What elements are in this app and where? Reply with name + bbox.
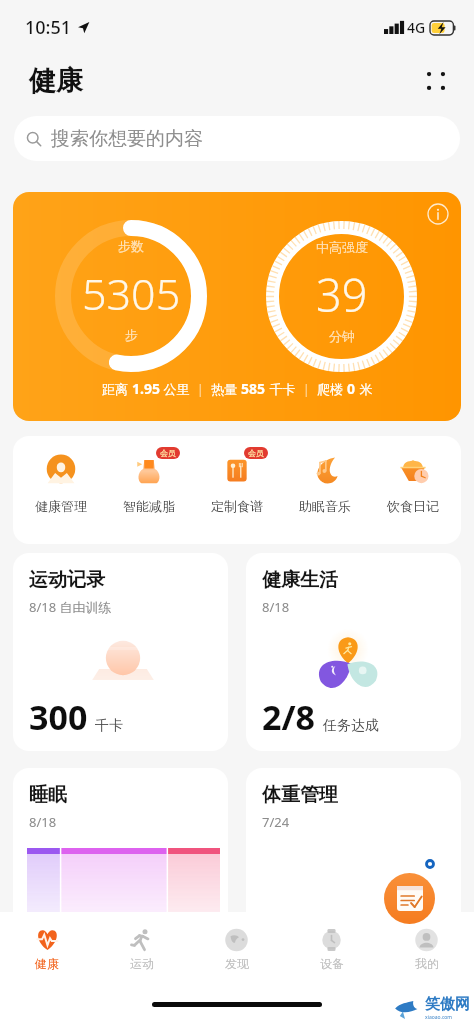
button[interactable]: 设备	[284, 912, 379, 982]
staticText: |	[296, 380, 317, 398]
staticText: 饮食日记	[387, 498, 439, 514]
staticText: 中高强度	[316, 239, 368, 255]
staticText: 公里	[160, 380, 190, 398]
button[interactable]: 健康生活	[246, 553, 461, 751]
button[interactable]: 饮食日记	[373, 450, 453, 514]
staticText: 会员	[160, 448, 176, 458]
button[interactable]: Info	[13, 192, 461, 421]
staticText: 运动记录	[29, 568, 105, 592]
button[interactable]: 会员	[197, 450, 277, 514]
staticText: 千卡	[95, 717, 123, 735]
staticText: 睡眠	[29, 783, 67, 807]
staticText: 笑傲网	[425, 995, 470, 1014]
staticText: 运动	[130, 956, 154, 971]
staticText: 2/8	[262, 694, 316, 740]
staticText: 健康	[29, 64, 83, 98]
staticText: 热量	[211, 380, 241, 398]
button[interactable]: 会员	[109, 450, 189, 514]
button[interactable]: 体重管理	[246, 768, 461, 948]
staticText: 39	[316, 264, 368, 325]
staticText: 我的	[415, 956, 439, 971]
staticText: 8/18	[29, 813, 57, 831]
staticText: 步	[125, 327, 138, 343]
staticText: 4G	[407, 18, 426, 37]
staticText: |	[190, 380, 211, 398]
button[interactable]: Add record	[384, 873, 435, 924]
button[interactable]: More options	[423, 68, 449, 94]
staticText: 8/18	[262, 598, 290, 616]
button[interactable]: 运动	[94, 912, 189, 982]
staticText: 米	[356, 380, 373, 398]
staticText: 健康	[35, 956, 59, 971]
staticText: 爬楼	[317, 380, 347, 398]
staticText: 7/24	[262, 813, 290, 831]
staticText: 发现	[225, 956, 249, 971]
staticText: 300	[29, 694, 88, 740]
staticText: 距离	[102, 380, 132, 398]
staticText: 定制食谱	[211, 498, 263, 514]
button[interactable]: 健康管理	[21, 450, 101, 514]
button[interactable]: 睡眠	[13, 768, 228, 948]
staticText: 会员	[248, 448, 264, 458]
button[interactable]: 我的	[379, 912, 474, 982]
staticText: 任务达成	[323, 717, 379, 735]
staticText: 1.95	[132, 379, 160, 398]
staticText: 设备	[320, 956, 344, 971]
staticText: 体重管理	[262, 783, 338, 807]
staticText: 585	[241, 379, 266, 398]
staticText: 0	[347, 379, 356, 398]
staticText: 健康生活	[262, 568, 338, 592]
button[interactable]: Info	[427, 203, 449, 225]
staticText: 智能减脂	[123, 498, 175, 514]
staticText: 8/18 自由训练	[29, 598, 112, 616]
staticText: 10:51	[25, 15, 72, 40]
staticText: 分钟	[329, 328, 355, 344]
staticText: 5305	[82, 264, 181, 323]
staticText: 步数	[118, 238, 144, 254]
button[interactable]: 健康	[0, 912, 94, 982]
button[interactable]: 运动记录	[13, 553, 228, 751]
staticText: 助眠音乐	[299, 498, 351, 514]
button[interactable]: 搜索你想要的内容	[14, 116, 460, 161]
staticText: 健康管理	[35, 498, 87, 514]
button[interactable]: 助眠音乐	[285, 450, 365, 514]
staticText: 千卡	[266, 380, 296, 398]
staticText: xiaoao.com	[425, 1014, 453, 1021]
button[interactable]: 发现	[189, 912, 284, 982]
staticText: 搜索你想要的内容	[51, 127, 203, 151]
